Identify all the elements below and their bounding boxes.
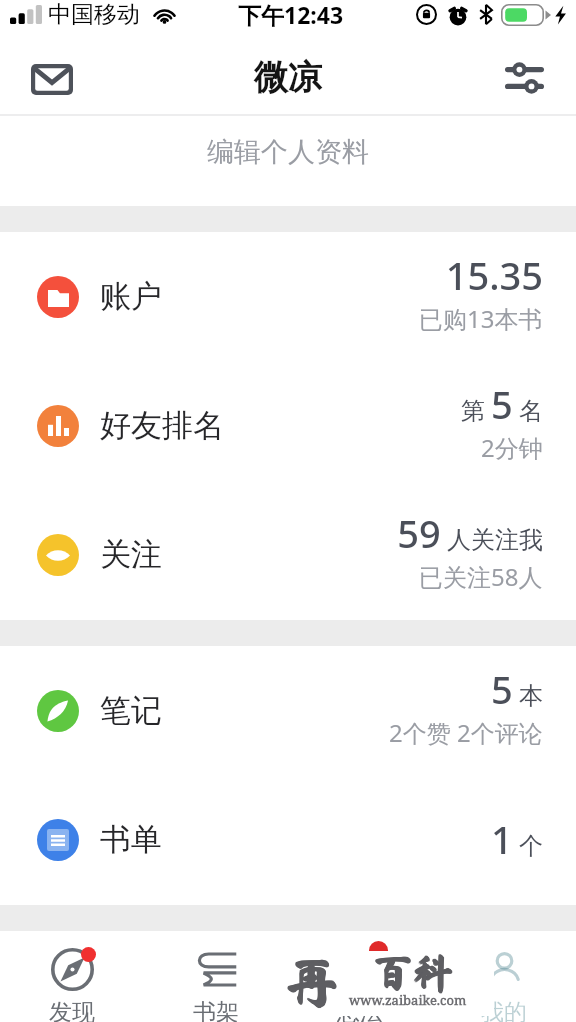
staticText: 再 bbox=[286, 956, 340, 1010]
button[interactable]: 好友排名 bbox=[0, 361, 576, 490]
staticText: 2分钟 bbox=[481, 431, 543, 464]
staticText: 1 个 bbox=[491, 813, 543, 865]
button[interactable]: 编辑个人资料 bbox=[0, 116, 576, 206]
staticText: 书架 bbox=[193, 998, 239, 1022]
staticText: 发现 bbox=[49, 998, 95, 1022]
staticText: 再 bbox=[284, 954, 338, 1008]
button[interactable]: 我的 bbox=[432, 931, 576, 1022]
staticText: 5 本 bbox=[491, 663, 543, 715]
staticText: 编辑个人资料 bbox=[207, 135, 369, 169]
staticText: 百科 bbox=[372, 953, 452, 993]
staticText: 关注 bbox=[100, 535, 162, 574]
staticText: 再 bbox=[284, 955, 338, 1009]
staticText: 我的 bbox=[481, 998, 527, 1022]
staticText: 百科 bbox=[373, 953, 453, 993]
button[interactable]: 笔记 bbox=[0, 646, 576, 775]
staticText: 书单 bbox=[100, 820, 162, 859]
staticText: 百科 bbox=[373, 954, 453, 994]
staticText: 笔记 bbox=[100, 691, 162, 730]
button[interactable]: Settings bbox=[498, 52, 550, 104]
button[interactable]: 想法 bbox=[288, 931, 432, 1022]
staticText: 下午12:43 bbox=[238, 0, 344, 30]
staticText: 百科 bbox=[374, 954, 454, 994]
staticText: 账户 bbox=[100, 277, 162, 316]
button[interactable]: 书架 bbox=[144, 931, 288, 1022]
staticText: 59 人关注我 bbox=[397, 507, 543, 559]
staticText: 中国移动 bbox=[48, 0, 140, 29]
staticText: 2个赞 2个评论 bbox=[389, 716, 543, 749]
staticText: 再 bbox=[285, 956, 339, 1010]
staticText: 百科 bbox=[373, 952, 453, 992]
staticText: 15.35 bbox=[445, 249, 543, 301]
staticText: 再 bbox=[285, 955, 339, 1009]
staticText: 已关注58人 bbox=[419, 560, 543, 593]
staticText: 再 bbox=[285, 954, 339, 1008]
button[interactable]: Messages bbox=[26, 53, 78, 105]
staticText: 第 5 名 bbox=[460, 378, 543, 430]
staticText: 想法 bbox=[337, 998, 383, 1022]
button[interactable]: 发现 bbox=[0, 931, 144, 1022]
staticText: 百科 bbox=[372, 952, 452, 992]
staticText: www.zaibaike.com bbox=[349, 991, 467, 1009]
button[interactable]: 账户 bbox=[0, 232, 576, 361]
staticText: 已购13本书 bbox=[419, 302, 543, 335]
staticText: 百科 bbox=[374, 953, 454, 993]
staticText: 再 bbox=[286, 955, 340, 1009]
button[interactable]: 关注 bbox=[0, 490, 576, 619]
button[interactable]: 书单 bbox=[0, 775, 576, 904]
staticText: 微凉 bbox=[254, 56, 322, 99]
staticText: 好友排名 bbox=[100, 406, 224, 445]
